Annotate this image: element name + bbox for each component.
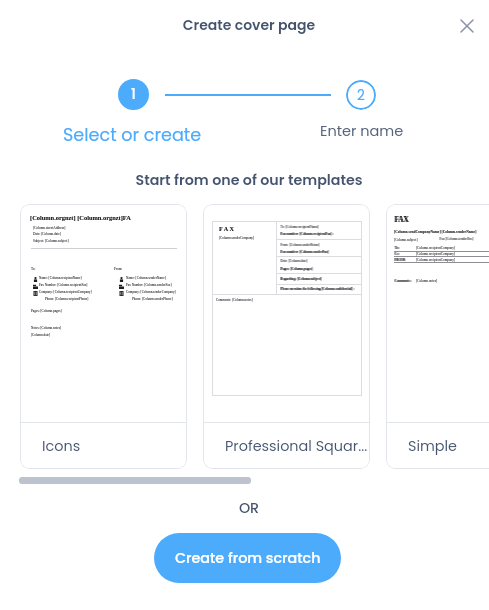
staticText: Date: [Column.date] bbox=[281, 259, 309, 263]
staticText: Fax Number: [Column.recipientFax] bbox=[39, 283, 88, 287]
button[interactable]: F A X bbox=[203, 204, 370, 469]
staticText: Subject: [Column.subject] bbox=[33, 239, 69, 243]
staticText: Fax number: [Column.senderFax] bbox=[281, 250, 330, 254]
staticText: To: [Column.recipientName] bbox=[281, 225, 320, 229]
staticText: Company: [Column.recipientCompany] bbox=[39, 290, 92, 294]
button[interactable]: 1 bbox=[118, 79, 149, 110]
staticText: Pages: [Column.pages] bbox=[281, 267, 314, 271]
staticText: [Column.subject] bbox=[394, 238, 418, 242]
staticText: Name: [Column.senderName] bbox=[126, 276, 166, 280]
staticText: [Column.sendCompanyName] [Column.senderN… bbox=[394, 230, 477, 234]
staticText: Comments: [Column.notes] bbox=[216, 298, 253, 302]
staticText: Please mention the following [Column.con… bbox=[280, 287, 354, 291]
staticText: Company: [Column.senderCompany] bbox=[126, 290, 176, 294]
staticText: Regarding: [Column.subject] bbox=[280, 277, 322, 281]
staticText: [Column.date] bbox=[31, 333, 51, 337]
staticText: Pages: [Column.pages] bbox=[31, 309, 62, 313]
staticText: [Column.subject] bbox=[394, 238, 418, 242]
staticText: Date: [Column.date] bbox=[33, 232, 61, 236]
staticText: Start from one of our templates bbox=[9, 170, 489, 190]
staticText: Phone: [Column.senderPhone] bbox=[132, 297, 173, 301]
staticText: Pages: [Column.pages] bbox=[31, 309, 62, 313]
staticText: FAX bbox=[394, 216, 409, 224]
staticText: [Column.streetAddress] bbox=[33, 226, 66, 230]
staticText: [Column.notes] bbox=[416, 279, 438, 283]
staticText: Create from scratch bbox=[175, 548, 321, 568]
staticText: Regarding: [Column.subject] bbox=[281, 277, 323, 281]
staticText: Name: [Column.recipientName] bbox=[39, 276, 82, 280]
staticText: To: bbox=[31, 267, 36, 271]
staticText: Phone: [Column.recipientPhone] bbox=[45, 297, 89, 301]
staticText: Company: [Column.senderCompany] bbox=[126, 290, 176, 294]
staticText: To: bbox=[394, 246, 399, 250]
staticText: [Column.notes] bbox=[416, 279, 438, 283]
staticText: [Column.sendCompanyName] [Column.senderN… bbox=[394, 230, 477, 234]
staticText: Cc: bbox=[394, 252, 400, 256]
staticText: Fax Number: [Column.recipientFax] bbox=[39, 283, 88, 287]
staticText: FAX bbox=[395, 216, 410, 224]
staticText: Date: [Column.date] bbox=[33, 232, 61, 236]
staticText: Fax number: [Column.senderFax] bbox=[280, 250, 329, 254]
staticText: [Column.senderCompany] bbox=[219, 236, 255, 240]
staticText: Icons bbox=[42, 436, 81, 456]
staticText: Create cover page bbox=[9, 15, 489, 35]
staticText: Company: [Column.recipientCompany] bbox=[39, 290, 92, 294]
staticText: Fax Number: [Column.senderFax] bbox=[126, 283, 172, 287]
staticText: Date: [Column.date] bbox=[280, 259, 308, 263]
staticText: Fax [Column.senderFax] bbox=[440, 237, 474, 241]
staticText: Comments: [Column.notes] bbox=[216, 298, 253, 302]
staticText: F A X bbox=[219, 225, 234, 232]
staticText: [Column.recipientCompany] bbox=[416, 246, 456, 250]
staticText: Professional Squar... bbox=[225, 436, 368, 456]
button[interactable]: 2 bbox=[346, 80, 376, 110]
staticText: FROM: bbox=[395, 258, 407, 262]
staticText: From: [Column.senderName] bbox=[280, 243, 320, 247]
staticText: [Column.recipientCompany] bbox=[416, 252, 456, 256]
staticText: [Column.senderCompany] bbox=[219, 236, 255, 240]
staticText: [Column.recipientCompany] bbox=[416, 246, 456, 250]
staticText: [Column.orgnzt] [Column.orgnzt]FA bbox=[30, 214, 131, 221]
staticText: Enter name bbox=[320, 121, 404, 141]
staticText: F A X bbox=[219, 225, 234, 232]
staticText: Phone: [Column.recipientPhone] bbox=[45, 297, 89, 301]
staticText: From: bbox=[114, 267, 123, 271]
staticText: Fax [Column.senderFax] bbox=[439, 237, 473, 241]
staticText: Notes: [Column.notes] bbox=[31, 326, 62, 330]
staticText: Notes: [Column.notes] bbox=[31, 326, 62, 330]
staticText: Cc: bbox=[395, 252, 401, 256]
staticText: Fax Number: [Column.senderFax] bbox=[126, 283, 172, 287]
staticText: [Column.recipientCompany] bbox=[416, 252, 456, 256]
button[interactable]: Create from scratch bbox=[154, 533, 341, 583]
staticText: Subject: [Column.subject] bbox=[33, 239, 69, 243]
staticText: [Column.date] bbox=[31, 333, 51, 337]
staticText: FROM: bbox=[394, 258, 406, 262]
staticText: Name: [Column.recipientName] bbox=[39, 276, 82, 280]
staticText: [Column.recipientCompany] bbox=[416, 258, 456, 262]
staticText: To: bbox=[31, 267, 36, 271]
staticText: From: bbox=[114, 267, 123, 271]
staticText: Select or create bbox=[63, 123, 202, 148]
staticText: From: [Column.senderName] bbox=[281, 243, 321, 247]
staticText: Comments: bbox=[395, 279, 412, 283]
staticText: Fax number: [Column.recipientFax] : bbox=[281, 232, 335, 236]
staticText: [Column.orgnzt] [Column.orgnzt]FA bbox=[30, 214, 131, 221]
staticText: Phone: [Column.senderPhone] bbox=[132, 297, 173, 301]
staticText: Simple bbox=[408, 436, 458, 456]
button[interactable]: FAX bbox=[386, 204, 489, 469]
staticText: To: [Column.recipientName] bbox=[280, 225, 319, 229]
staticText: Pages: [Column.pages] bbox=[280, 267, 313, 271]
staticText: OR bbox=[9, 498, 489, 518]
staticText: Comments: bbox=[394, 279, 411, 283]
staticText: Name: [Column.senderName] bbox=[126, 276, 166, 280]
staticText: Fax number: [Column.recipientFax] : bbox=[280, 232, 334, 236]
staticText: 2 bbox=[357, 86, 365, 105]
staticText: [Column.recipientCompany] bbox=[416, 258, 456, 262]
staticText: Please mention the following [Column.con… bbox=[281, 287, 355, 291]
button[interactable]: [Column.orgnzt] [Column.orgnzt]FA bbox=[20, 204, 187, 469]
button[interactable]: Close bbox=[451, 10, 483, 42]
staticText: 1 bbox=[131, 85, 136, 104]
staticText: [Column.streetAddress] bbox=[33, 226, 66, 230]
staticText: To: bbox=[395, 246, 400, 250]
